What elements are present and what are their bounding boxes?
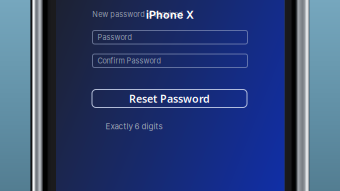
- button[interactable]: Password: [92, 30, 247, 44]
- button[interactable]: Reset Password: [92, 89, 247, 107]
- button[interactable]: Confirm Password: [92, 54, 247, 67]
- staticText: Confirm Password: [97, 56, 160, 65]
- staticText: Reset Password: [129, 91, 210, 106]
- staticText: New password is required: [92, 10, 182, 19]
- staticText: Password: [97, 33, 131, 42]
- staticText: iPhone X: [146, 8, 194, 21]
- staticText: Exactly 6 digits: [105, 121, 162, 131]
